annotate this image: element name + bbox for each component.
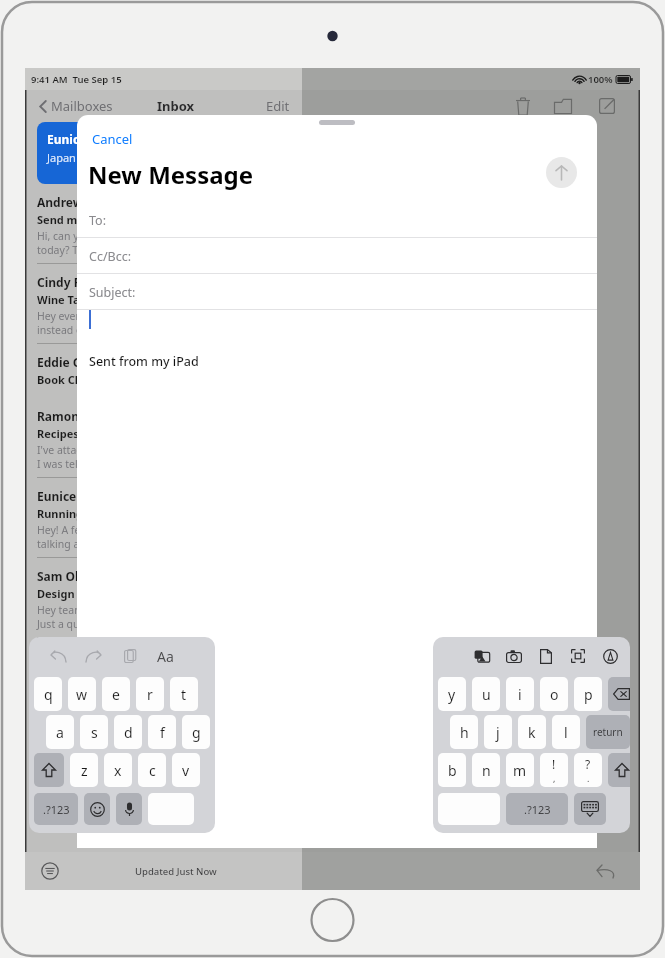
button[interactable]: Cancel [92, 130, 133, 148]
button[interactable]: .?123 [34, 793, 78, 825]
button[interactable]: i [506, 677, 534, 711]
button[interactable]: Markup [597, 643, 623, 669]
button[interactable]: d [114, 715, 142, 749]
button[interactable]: Photos [469, 643, 495, 669]
button[interactable]: Aa [157, 647, 174, 666]
button[interactable]: Send [546, 157, 577, 188]
button[interactable]: Eunice Luna [37, 122, 302, 184]
button[interactable]: Filter [39, 860, 61, 882]
staticText: o [550, 685, 559, 704]
staticText: I've attached a few of the [37, 443, 161, 457]
staticText: return [593, 725, 623, 739]
staticText: f [160, 723, 165, 742]
button[interactable] [84, 793, 110, 825]
button[interactable]: l [552, 715, 580, 749]
button[interactable]: f [148, 715, 176, 749]
button[interactable]: Scan [565, 643, 591, 669]
button[interactable]: r [136, 677, 164, 711]
button[interactable]: t [170, 677, 198, 711]
button[interactable]: q [34, 677, 62, 711]
staticText: Sam Oliver [37, 568, 102, 584]
staticText: Sent from my iPad [89, 353, 199, 370]
staticText: 9:41 AM Tue Sep 15 [31, 73, 122, 86]
button[interactable]: Ramona Sims [37, 408, 302, 478]
button[interactable] [116, 793, 142, 825]
staticText: e [112, 685, 120, 704]
staticText: Recipes [37, 426, 79, 441]
button[interactable]: Delete [505, 91, 541, 121]
staticText: Book Club [37, 372, 93, 387]
staticText: z [81, 761, 88, 780]
staticText: Just a quick note on the [37, 617, 153, 631]
button[interactable]: Sam Oliver [37, 568, 302, 638]
staticText: l [564, 723, 568, 742]
button[interactable]: Undo [43, 641, 73, 671]
staticText: Andrew Vasquez [37, 194, 136, 210]
staticText: p [584, 685, 593, 704]
button[interactable]: a [46, 715, 74, 749]
button[interactable]: Edit [266, 97, 290, 115]
staticText: v [182, 761, 190, 780]
button[interactable]: Move to folder [541, 91, 585, 121]
button[interactable]: b [438, 753, 466, 787]
staticText: Cc/Bcc: [89, 248, 132, 265]
button[interactable]: v [172, 753, 200, 787]
staticText: . [587, 772, 590, 784]
staticText: Eddie Garcia [37, 354, 111, 370]
button[interactable]: Redo [79, 641, 109, 671]
button[interactable]: space [438, 793, 500, 825]
staticText: Updated Just Now [135, 865, 217, 878]
staticText: New Message [88, 158, 254, 191]
staticText: Hey team, here are the [37, 603, 150, 617]
button[interactable]: Camera [501, 643, 527, 669]
button[interactable]: w [68, 677, 96, 711]
staticText: 100% [588, 73, 613, 86]
button[interactable] [574, 793, 606, 825]
button[interactable]: n [472, 753, 500, 787]
button[interactable]: Andrew Vasquez [37, 194, 302, 264]
button[interactable]: z [70, 753, 98, 787]
button[interactable]: Compose [585, 91, 629, 121]
button[interactable]: return [586, 715, 630, 749]
button[interactable]: ? [574, 753, 602, 787]
staticText: talking about meeting up [37, 537, 162, 551]
button[interactable]: y [438, 677, 466, 711]
button[interactable]: x [104, 753, 132, 787]
button[interactable]: Paste [115, 641, 145, 671]
button[interactable]: g [182, 715, 210, 749]
button[interactable]: c [138, 753, 166, 787]
button[interactable]: ! [540, 753, 568, 787]
button[interactable]: u [472, 677, 500, 711]
button[interactable]: Eunice Luna [37, 488, 302, 558]
button[interactable]: Cindy Ramirez [37, 274, 302, 344]
staticText: instead of next week. [37, 323, 142, 337]
button[interactable]: To: [77, 202, 597, 238]
button[interactable]: o [540, 677, 568, 711]
button[interactable] [34, 753, 64, 787]
staticText: a [56, 723, 64, 742]
staticText: Inbox [157, 97, 195, 115]
staticText: Hey everyone! We should [37, 309, 162, 323]
button[interactable]: h [450, 715, 478, 749]
button[interactable] [608, 677, 630, 711]
staticText: Send me the files [37, 212, 131, 227]
button[interactable]: Document [533, 643, 559, 669]
button[interactable]: s [80, 715, 108, 749]
button[interactable]: .?123 [506, 793, 568, 825]
button[interactable]: k [518, 715, 546, 749]
button[interactable]: Subject: [77, 274, 597, 310]
button[interactable]: Reply [594, 859, 618, 883]
button[interactable]: j [484, 715, 512, 749]
button[interactable]: space [148, 793, 194, 825]
button[interactable]: Eddie Garcia [37, 354, 302, 398]
staticText: n [482, 761, 491, 780]
button[interactable]: m [506, 753, 534, 787]
button[interactable]: p [574, 677, 602, 711]
button[interactable]: e [102, 677, 130, 711]
button[interactable] [608, 753, 630, 787]
button[interactable]: Mailboxes [39, 97, 113, 115]
staticText: t [181, 685, 187, 704]
staticText: Hi, can you send me the [37, 229, 156, 243]
button[interactable]: Cc/Bcc: [77, 238, 597, 274]
staticText: To: [89, 212, 106, 229]
